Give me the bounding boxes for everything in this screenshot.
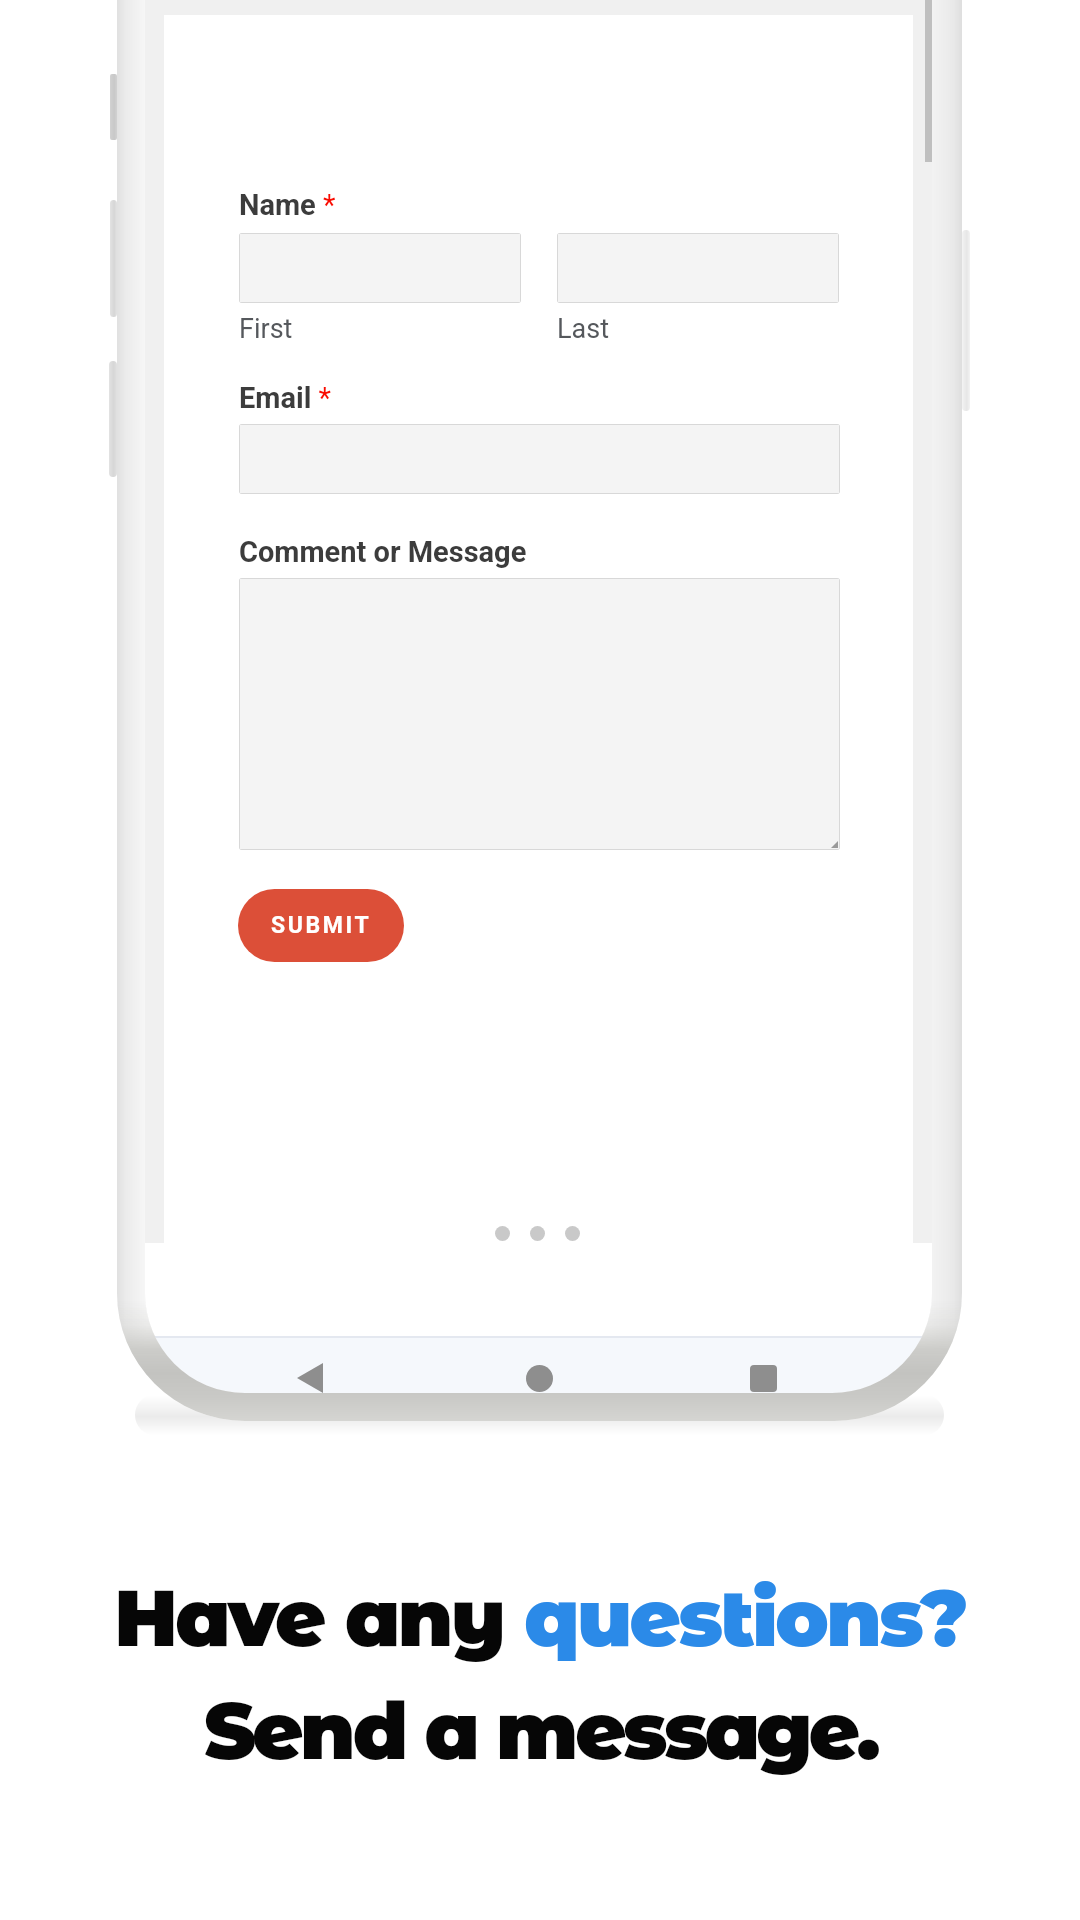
staticText: Email * bbox=[239, 381, 331, 415]
button[interactable]: SUBMIT bbox=[238, 889, 404, 962]
button[interactable] bbox=[239, 578, 840, 850]
button[interactable]: Home bbox=[515, 1354, 563, 1393]
button[interactable] bbox=[239, 233, 521, 303]
button[interactable]: Recent apps bbox=[739, 1354, 787, 1393]
staticText: Last bbox=[557, 313, 609, 345]
staticText: Have any questions? bbox=[114, 1570, 966, 1666]
staticText: Comment or Message bbox=[239, 535, 527, 569]
staticText: Name * bbox=[239, 188, 336, 222]
staticText: First bbox=[239, 313, 293, 345]
button[interactable]: Back bbox=[286, 1354, 334, 1393]
button[interactable] bbox=[239, 424, 840, 494]
staticText: Send a message. bbox=[204, 1683, 877, 1779]
staticText: SUBMIT bbox=[271, 912, 372, 939]
button[interactable] bbox=[557, 233, 839, 303]
